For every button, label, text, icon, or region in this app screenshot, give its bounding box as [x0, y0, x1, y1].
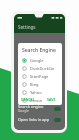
button[interactable]: DuckDuckGo	[22, 64, 58, 72]
button[interactable]: Yahoo	[22, 88, 58, 96]
staticText: Yahoo	[30, 90, 42, 95]
button[interactable]: StartPage	[22, 72, 58, 80]
staticText: DuckDuckGo	[30, 66, 55, 71]
staticText: General	[18, 97, 33, 102]
staticText: Bing	[30, 82, 39, 87]
button[interactable]: CANCEL	[19, 96, 37, 103]
button[interactable]: Google	[22, 56, 58, 64]
staticText: Search Engine	[22, 47, 56, 54]
staticText: Google	[18, 109, 29, 113]
button[interactable]: SAVE	[45, 96, 58, 103]
button[interactable]: Search engine	[14, 103, 65, 114]
button[interactable]: Bing	[22, 80, 58, 88]
button[interactable]: Open links in app	[14, 114, 65, 125]
staticText: StartPage	[30, 74, 49, 79]
staticText: Search engine	[18, 104, 44, 109]
staticText: Settings	[18, 24, 36, 30]
button[interactable]: Ecosia	[22, 96, 58, 104]
staticText: Open links in app	[18, 117, 50, 122]
staticText: Ecosia	[30, 98, 42, 103]
staticText: Google	[30, 58, 44, 63]
